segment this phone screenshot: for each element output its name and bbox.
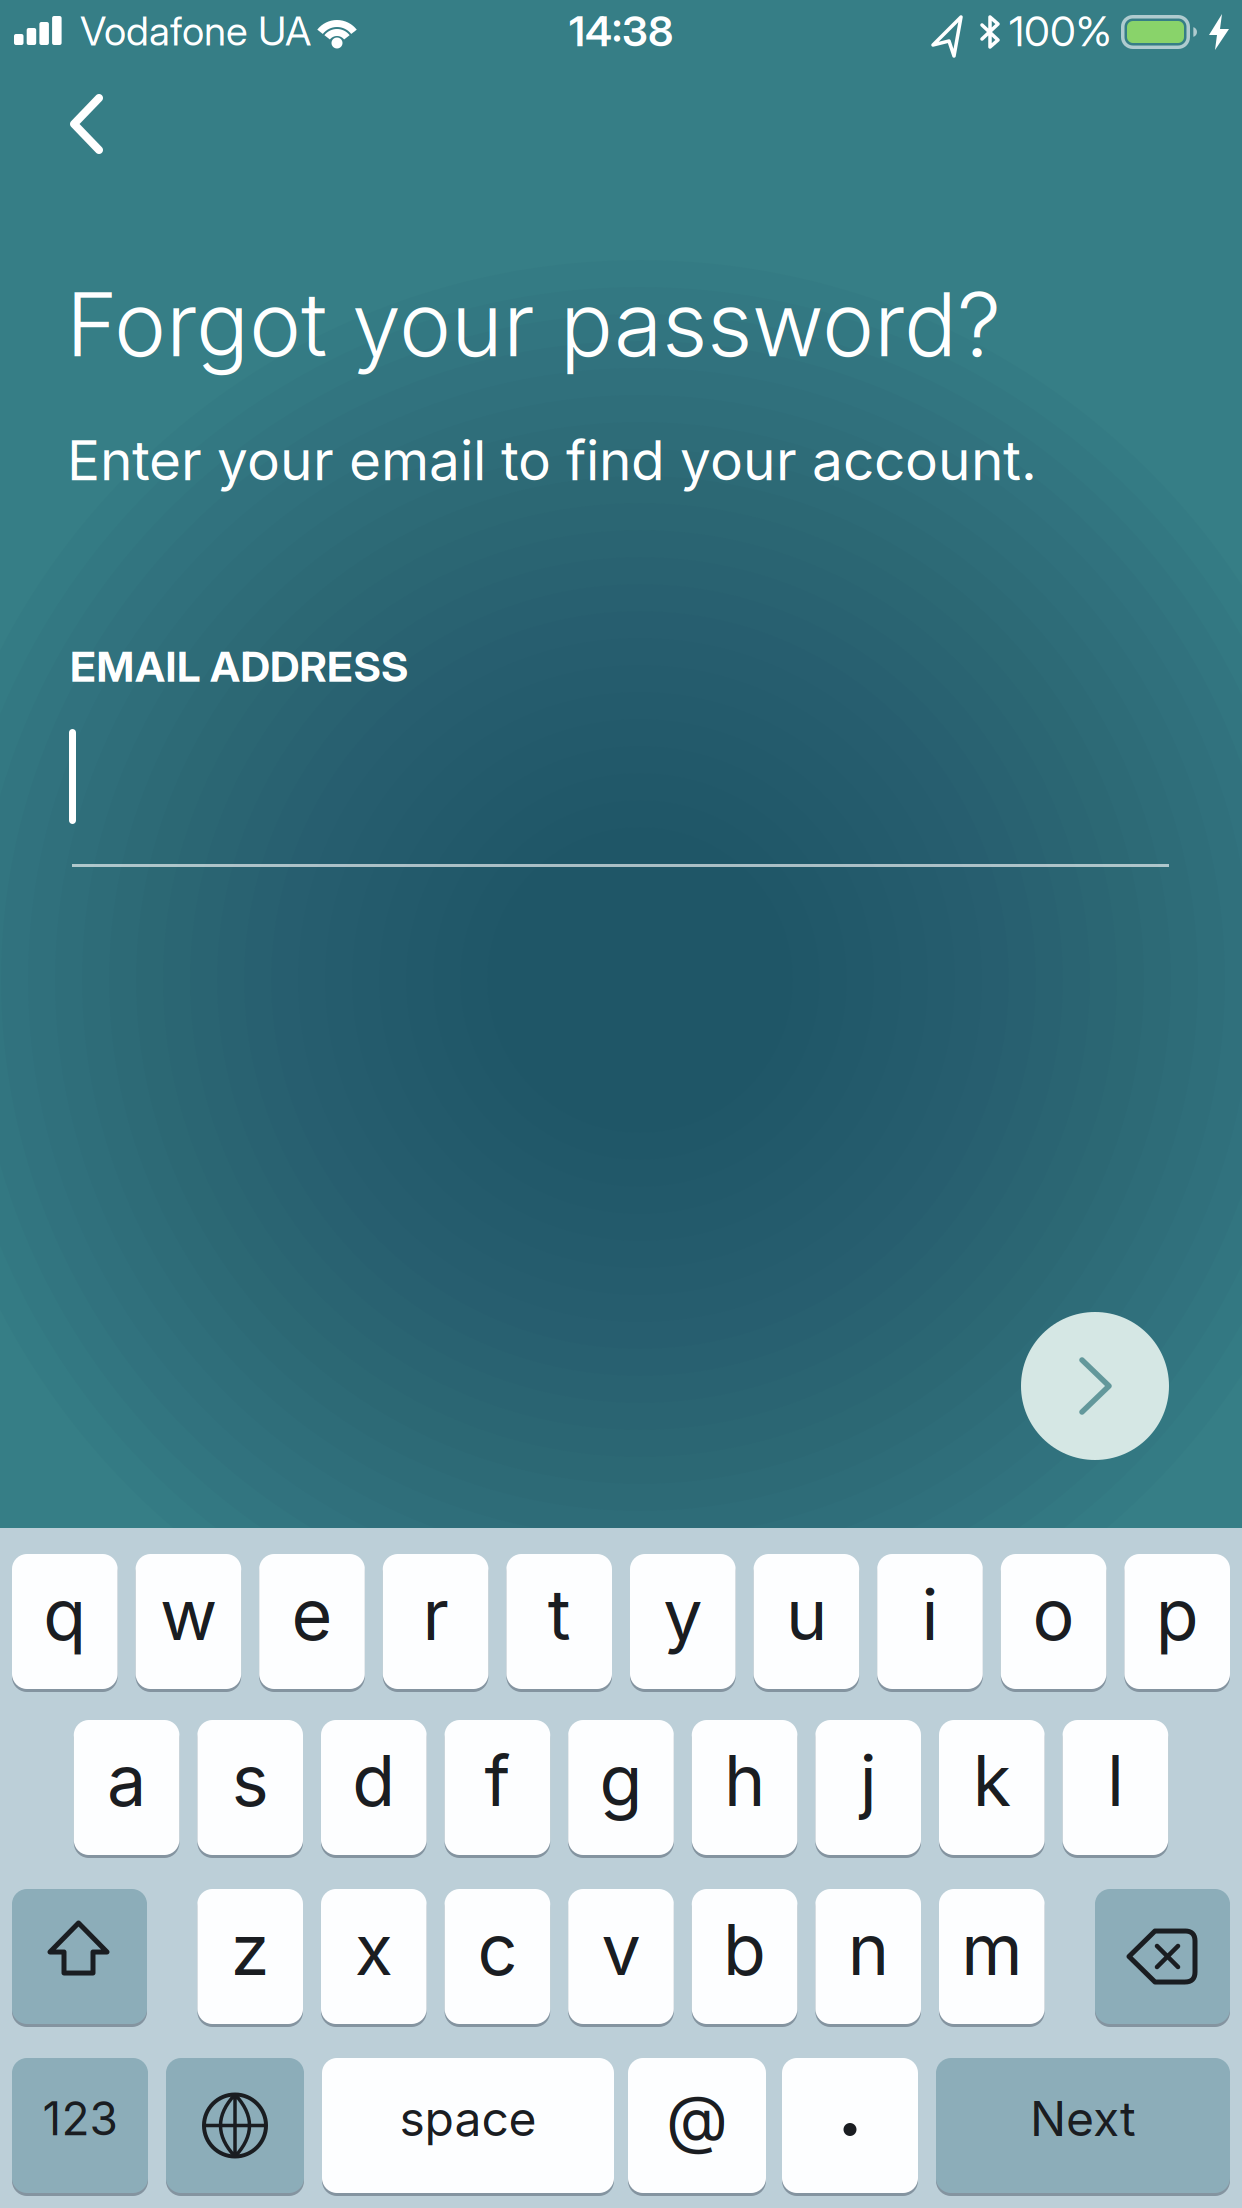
staticText: c xyxy=(477,1907,517,1992)
button[interactable]: w xyxy=(136,1554,241,1689)
button[interactable]: 123 xyxy=(12,2058,148,2193)
button[interactable]: m xyxy=(939,1889,1045,2024)
button[interactable]: . xyxy=(782,2058,918,2193)
button[interactable]: p xyxy=(1124,1554,1230,1689)
button[interactable]: i xyxy=(877,1554,983,1689)
button[interactable]: s xyxy=(197,1720,303,1855)
staticText: 123 xyxy=(42,2091,117,2146)
staticText: g xyxy=(599,1738,642,1823)
button[interactable]: c xyxy=(445,1889,550,2024)
button[interactable]: b xyxy=(692,1889,797,2024)
staticText: u xyxy=(786,1572,827,1657)
button[interactable]: Change keyboard xyxy=(166,2058,304,2193)
button[interactable]: h xyxy=(692,1720,797,1855)
button[interactable]: y xyxy=(630,1554,736,1689)
staticText: v xyxy=(601,1907,640,1992)
button[interactable]: k xyxy=(939,1720,1045,1855)
staticText: Vodafone UA xyxy=(80,7,311,55)
staticText: 14:38 xyxy=(569,6,673,56)
button[interactable]: e xyxy=(259,1554,365,1689)
staticText: e xyxy=(291,1572,332,1657)
staticText: Enter your email to find your account. xyxy=(67,427,1037,493)
button[interactable]: j xyxy=(815,1720,921,1855)
button[interactable]: Email address xyxy=(69,715,1169,867)
button[interactable]: v xyxy=(568,1889,674,2024)
staticText: l xyxy=(1107,1738,1124,1823)
staticText: n xyxy=(848,1907,889,1992)
button[interactable]: Shift xyxy=(12,1889,147,2024)
staticText: x xyxy=(355,1907,393,1992)
button[interactable]: n xyxy=(815,1889,921,2024)
staticText: r xyxy=(423,1572,449,1657)
button[interactable]: Back xyxy=(30,69,140,179)
staticText: b xyxy=(723,1907,766,1992)
button[interactable]: @ xyxy=(628,2058,766,2193)
staticText: k xyxy=(973,1738,1011,1823)
staticText: a xyxy=(107,1738,146,1823)
button[interactable]: space xyxy=(322,2058,614,2193)
button[interactable]: d xyxy=(321,1720,427,1855)
button[interactable]: o xyxy=(1001,1554,1106,1689)
staticText: z xyxy=(231,1907,270,1992)
button[interactable]: r xyxy=(383,1554,488,1689)
button[interactable]: g xyxy=(568,1720,674,1855)
staticText: p xyxy=(1156,1572,1199,1657)
button[interactable]: t xyxy=(506,1554,612,1689)
staticText: space xyxy=(399,2089,536,2148)
button[interactable]: z xyxy=(197,1889,303,2024)
staticText: i xyxy=(921,1572,938,1657)
staticText: d xyxy=(352,1738,395,1823)
staticText: o xyxy=(1033,1572,1075,1657)
staticText: t xyxy=(548,1572,571,1657)
staticText: q xyxy=(43,1572,86,1657)
staticText: Next xyxy=(1030,2089,1136,2148)
button[interactable]: Next xyxy=(1021,1312,1169,1460)
staticText: @ xyxy=(666,2080,728,2157)
staticText: 100% xyxy=(1009,6,1112,56)
staticText: j xyxy=(860,1738,877,1823)
button[interactable]: x xyxy=(321,1889,427,2024)
staticText: s xyxy=(232,1738,269,1823)
staticText: Forgot your password? xyxy=(66,271,1001,377)
button[interactable]: u xyxy=(754,1554,859,1689)
staticText: y xyxy=(663,1572,702,1657)
button[interactable]: Next xyxy=(936,2058,1230,2193)
button[interactable]: Delete xyxy=(1095,1889,1230,2024)
staticText: m xyxy=(961,1907,1022,1992)
button[interactable]: a xyxy=(74,1720,179,1855)
button[interactable]: q xyxy=(12,1554,118,1689)
staticText: EMAIL ADDRESS xyxy=(70,641,408,692)
staticText: w xyxy=(160,1572,217,1657)
staticText: h xyxy=(724,1738,765,1823)
button[interactable]: f xyxy=(445,1720,550,1855)
button[interactable]: l xyxy=(1063,1720,1168,1855)
staticText: f xyxy=(484,1738,510,1823)
